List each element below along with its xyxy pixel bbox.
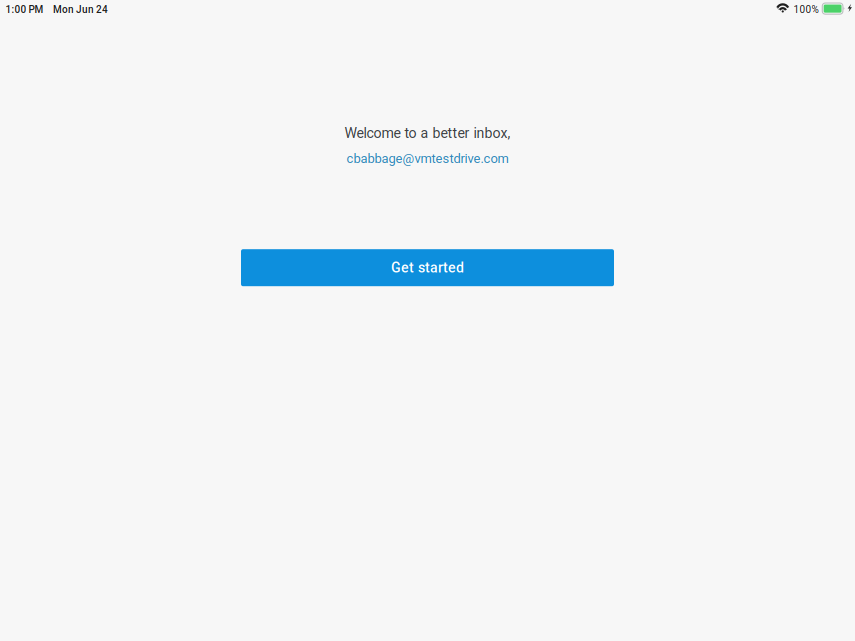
staticText: Get started xyxy=(391,259,464,276)
staticText: Mon Jun 24 xyxy=(53,4,108,15)
staticText: Welcome to a better inbox, xyxy=(344,125,510,142)
staticText: 100% xyxy=(793,4,818,15)
button[interactable]: Get started xyxy=(241,249,614,286)
staticText: cbabbage@vmtestdrive.com xyxy=(346,151,508,166)
staticText: 1:00 PM xyxy=(5,4,43,15)
